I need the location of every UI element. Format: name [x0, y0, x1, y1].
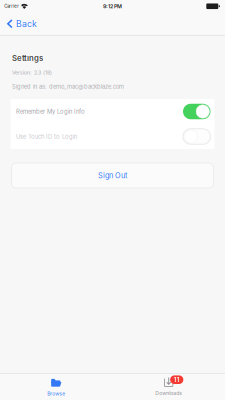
staticText: Remember My Login Info [16, 108, 85, 115]
staticText: Browse [47, 391, 65, 397]
staticText: Downloads [155, 390, 182, 396]
staticText: Back [16, 18, 37, 29]
button[interactable]: Use Touch ID to Login [10, 124, 214, 149]
staticText: Version: 2.3 (18) [12, 69, 52, 76]
button[interactable]: Sign Out [11, 163, 213, 188]
staticText: 11 [174, 376, 180, 383]
button[interactable]: Remember My Login Info [10, 99, 214, 124]
button[interactable]: 11 [112, 373, 225, 400]
staticText: Settings [12, 53, 43, 63]
staticText: Carrier [4, 4, 19, 9]
staticText: 9:12 PM [103, 3, 122, 9]
staticText: Sign Out [98, 171, 127, 180]
button[interactable]: Browse [0, 373, 112, 400]
staticText: Use Touch ID to Login [16, 133, 77, 140]
button[interactable]: Back [0, 12, 44, 35]
staticText: Signed in as: demo_mac@backblaze.com [12, 83, 124, 90]
